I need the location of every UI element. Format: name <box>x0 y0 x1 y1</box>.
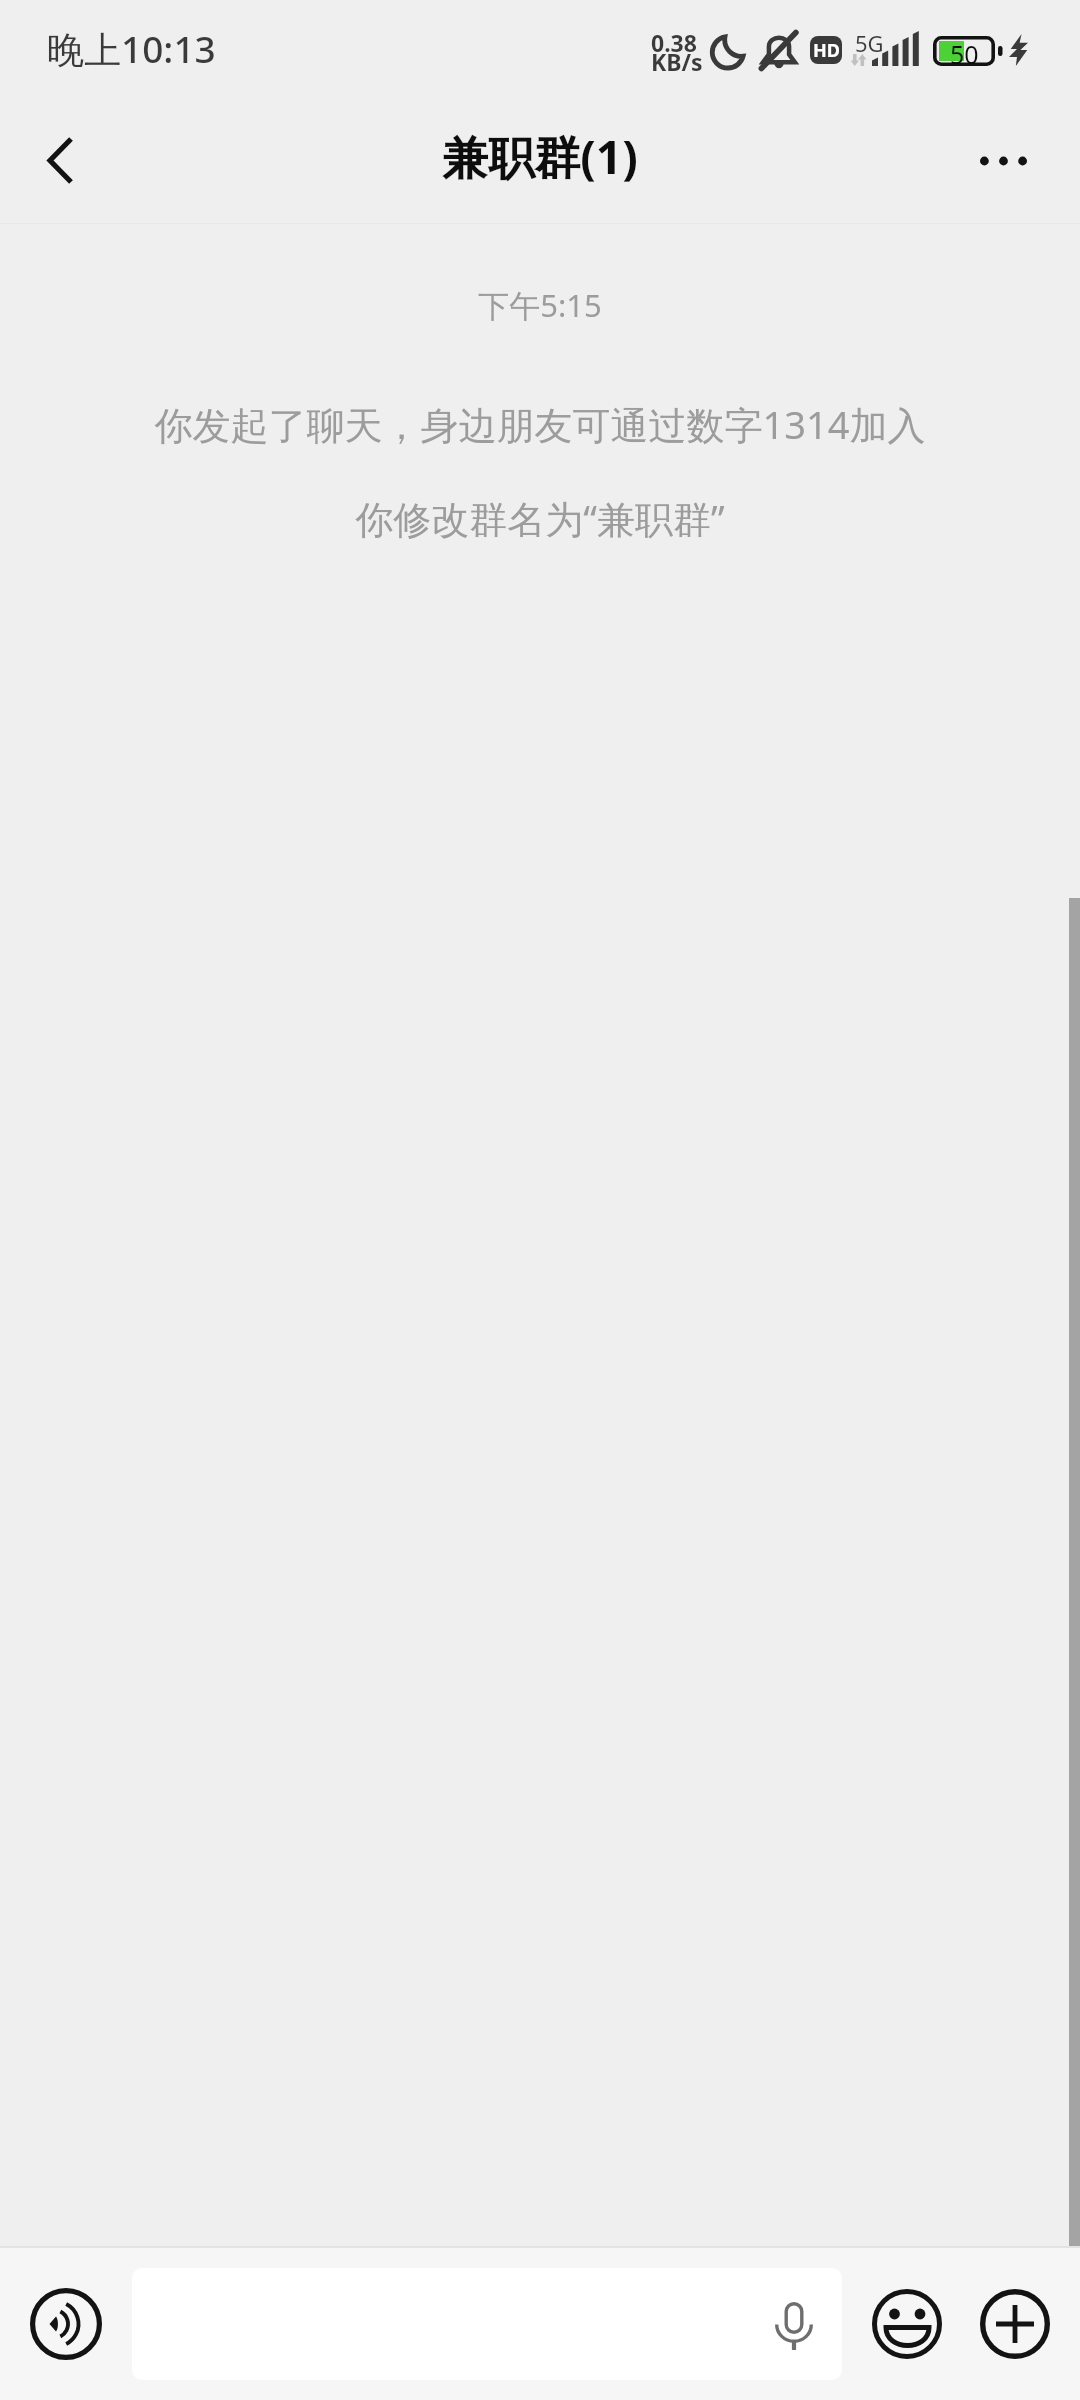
staticText: KB/s <box>651 46 703 77</box>
staticText: 0.38 <box>651 27 697 58</box>
staticText: 晚上10:13 <box>47 23 216 74</box>
button[interactable] <box>132 2268 842 2380</box>
button[interactable]: More options <box>962 103 1080 221</box>
button[interactable]: Back <box>0 102 118 220</box>
staticText: 你发起了聊天，身边朋友可通过数字1314加入 <box>40 398 1040 450</box>
button[interactable]: Voice input <box>18 2276 114 2372</box>
staticText: HD <box>813 38 840 63</box>
button[interactable]: More <box>967 2276 1063 2372</box>
staticText: 5G <box>855 28 884 58</box>
staticText: 你修改群名为“兼职群” <box>40 492 1040 544</box>
staticText: 兼职群(1) <box>442 125 638 188</box>
button[interactable]: Emoji <box>859 2276 955 2372</box>
staticText: 下午5:15 <box>0 284 1080 326</box>
staticText: 50 <box>950 37 979 68</box>
